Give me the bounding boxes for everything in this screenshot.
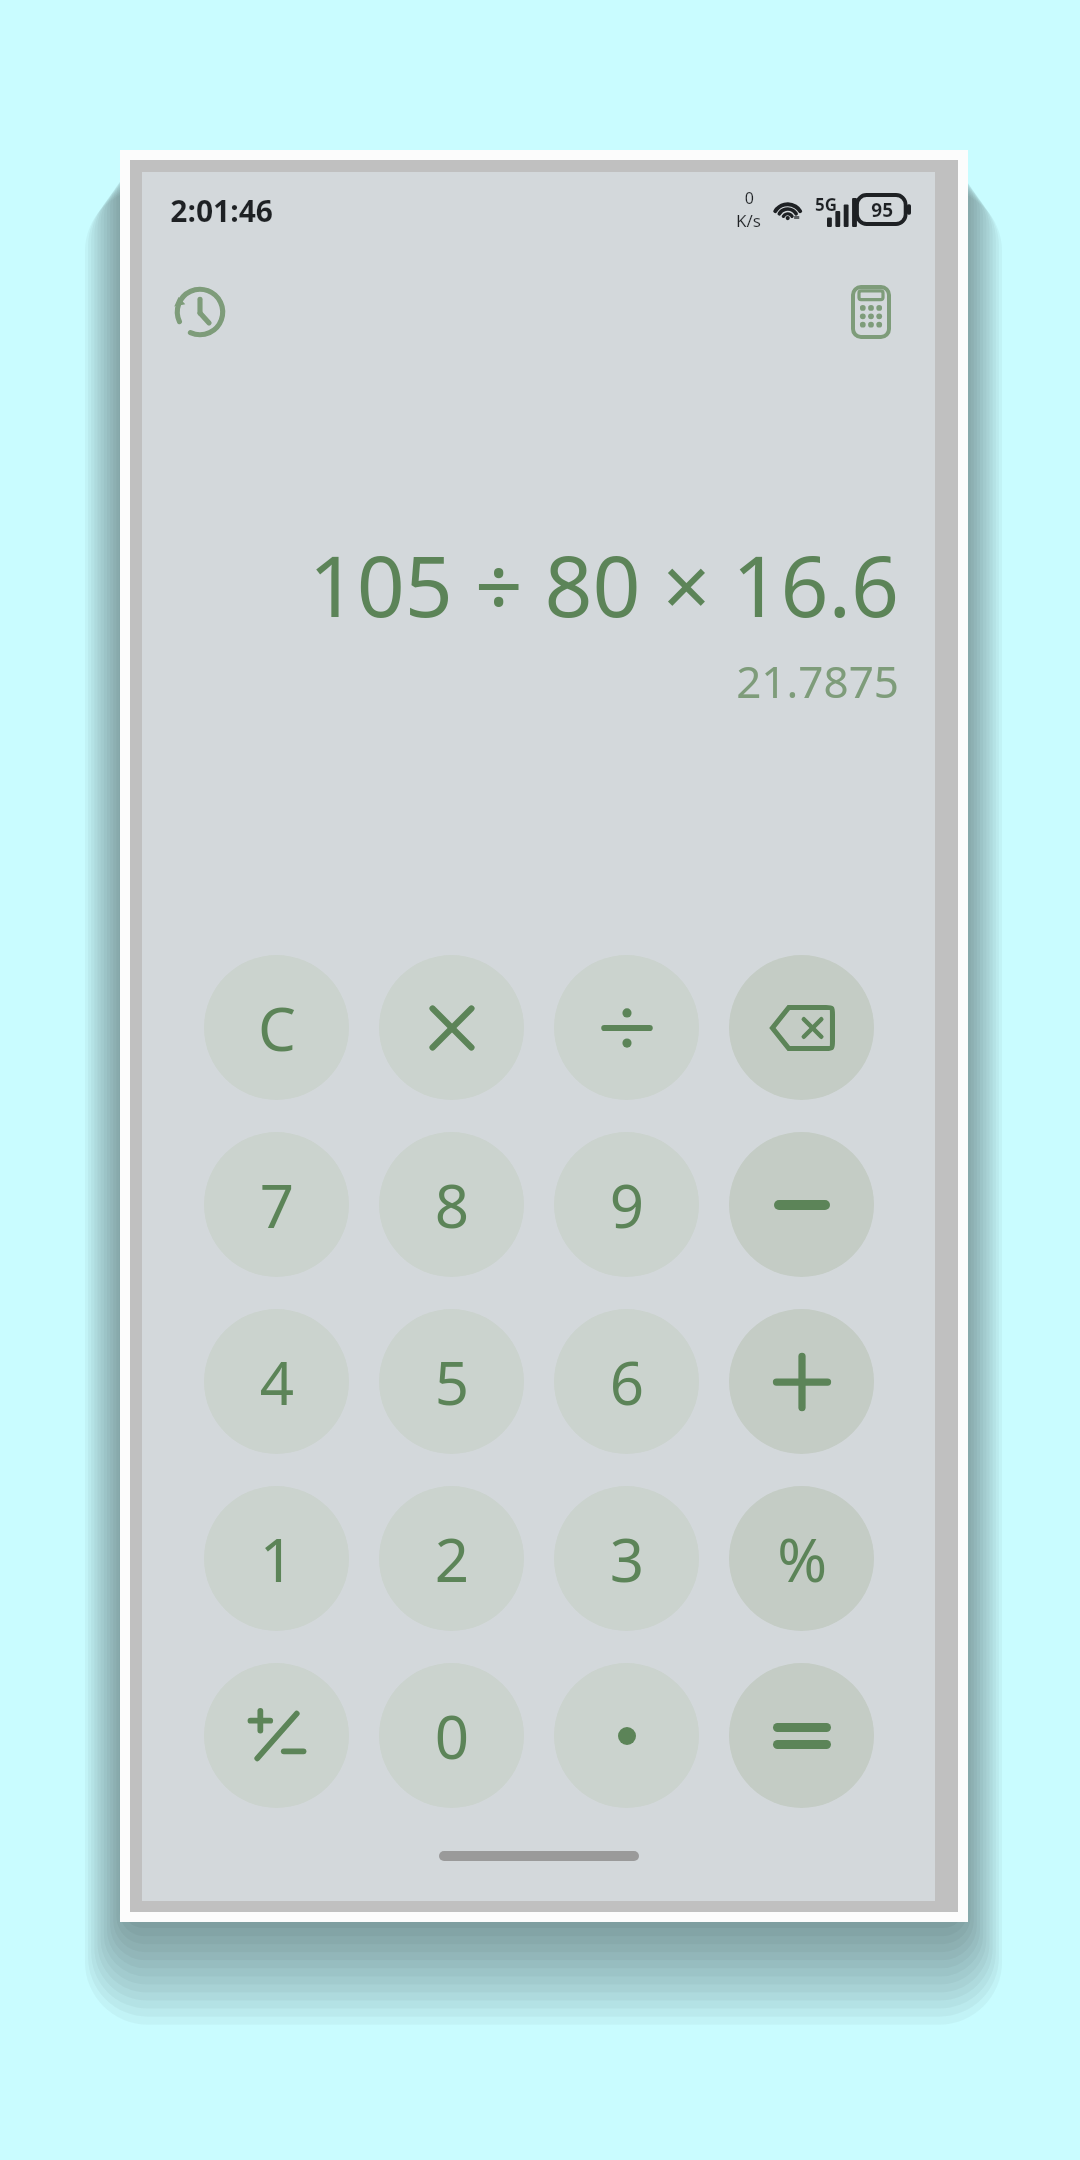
button[interactable]: Plus: [729, 1309, 874, 1454]
staticText: 21.7875: [736, 651, 899, 711]
button[interactable]: Divide: [554, 955, 699, 1100]
staticText: 5G: [814, 193, 837, 216]
button[interactable]: Minus: [729, 1132, 874, 1277]
staticText: 105 ÷ 80 × 16.6: [308, 527, 899, 641]
staticText: 7: [259, 1164, 294, 1246]
button[interactable]: Toggle sign: [204, 1663, 349, 1808]
button[interactable]: 9: [554, 1132, 699, 1277]
staticText: 5: [434, 1341, 469, 1423]
staticText: 95: [871, 197, 893, 223]
button[interactable]: 2: [379, 1486, 524, 1631]
button[interactable]: 7: [204, 1132, 349, 1277]
button[interactable]: 0: [379, 1663, 524, 1808]
staticText: 6: [609, 1341, 644, 1423]
staticText: 2: [434, 1518, 469, 1600]
button[interactable]: 1: [204, 1486, 349, 1631]
staticText: 2:01:46: [170, 190, 273, 231]
button[interactable]: Equals: [729, 1663, 874, 1808]
button[interactable]: History: [158, 270, 242, 354]
button[interactable]: Decimal point: [554, 1663, 699, 1808]
staticText: 1: [259, 1518, 294, 1600]
staticText: 9: [609, 1164, 644, 1246]
button[interactable]: 3: [554, 1486, 699, 1631]
button[interactable]: 5: [379, 1309, 524, 1454]
button[interactable]: 4: [204, 1309, 349, 1454]
staticText: 0: [744, 187, 754, 209]
staticText: K/s: [736, 209, 761, 232]
staticText: C: [258, 987, 296, 1069]
staticText: 8: [434, 1164, 469, 1246]
button[interactable]: %: [729, 1486, 874, 1631]
button[interactable]: 8: [379, 1132, 524, 1277]
button[interactable]: Backspace: [729, 955, 874, 1100]
button[interactable]: Calculator mode: [829, 270, 913, 354]
button[interactable]: 6: [554, 1309, 699, 1454]
staticText: %: [777, 1518, 827, 1600]
staticText: 0: [434, 1695, 469, 1777]
button[interactable]: Multiply: [379, 955, 524, 1100]
staticText: 4: [259, 1341, 294, 1423]
staticText: 3: [609, 1518, 644, 1600]
button[interactable]: C: [204, 955, 349, 1100]
